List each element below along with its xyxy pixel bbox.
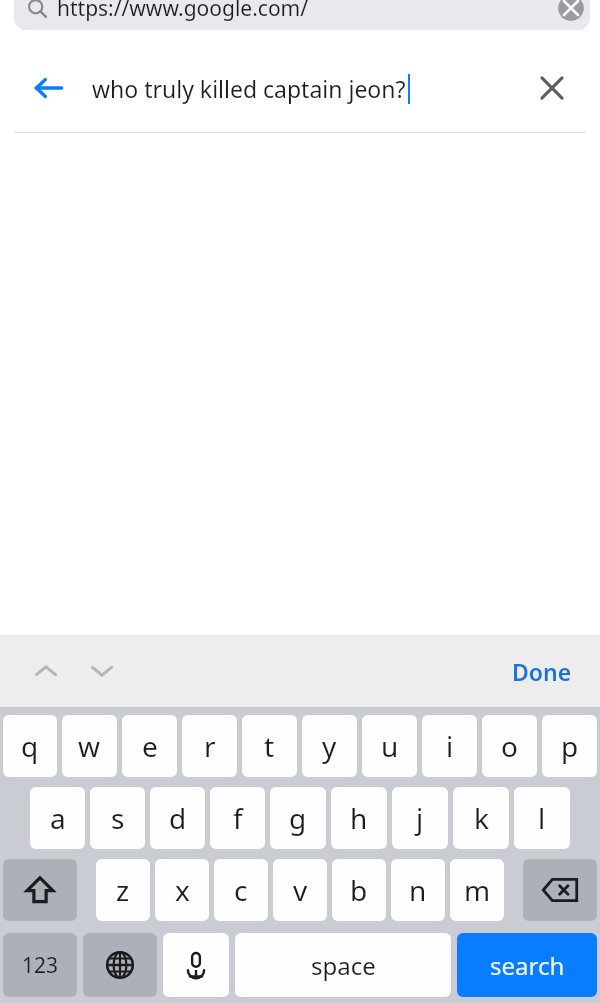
button[interactable]: Shift [3,859,77,921]
staticText: i [446,727,454,765]
staticText: u [381,727,399,765]
staticText: m [464,871,491,909]
button[interactable]: g [270,787,326,849]
staticText: x [175,871,190,909]
button[interactable]: f [210,787,265,849]
button[interactable]: r [182,715,237,777]
button[interactable]: space [235,933,451,997]
staticText: b [350,871,368,909]
button[interactable]: u [362,715,417,777]
staticText: h [350,799,368,837]
staticText: l [538,799,546,837]
button[interactable]: j [392,787,448,849]
staticText: v [293,871,308,909]
staticText: s [111,799,125,837]
staticText: w [78,727,101,765]
button[interactable]: search [457,933,597,997]
staticText: search [490,949,565,982]
button[interactable]: m [450,859,504,921]
button[interactable]: Backspace [523,859,597,921]
button[interactable]: k [453,787,509,849]
staticText: j [416,799,424,837]
button[interactable]: c [214,859,268,921]
staticText: y [322,727,337,765]
button[interactable]: 123 [3,933,77,997]
button[interactable]: Change keyboard [83,933,157,997]
button[interactable]: Clear search [532,68,572,108]
staticText: a [50,799,66,837]
staticText: t [264,727,275,765]
button[interactable]: Next field [80,649,124,693]
staticText: 123 [22,951,59,980]
button[interactable]: i [422,715,477,777]
button[interactable]: t [242,715,297,777]
staticText: r [204,727,216,765]
button[interactable]: Dictate [163,933,229,997]
button[interactable]: d [150,787,205,849]
staticText: https://www.google.com/ [57,0,558,23]
staticText: k [474,799,489,837]
staticText: q [21,727,39,765]
button[interactable]: https://www.google.com/ [14,0,590,30]
button[interactable]: a [30,787,85,849]
staticText: o [501,727,518,765]
staticText: p [561,727,579,765]
button[interactable]: o [482,715,537,777]
button[interactable]: x [155,859,209,921]
button[interactable]: Clear address [558,0,584,21]
button[interactable]: v [273,859,327,921]
staticText: c [234,871,248,909]
staticText: who truly killed captain jeon? [92,73,406,104]
button[interactable]: Back [0,44,600,132]
staticText: n [409,871,427,909]
button[interactable]: w [62,715,117,777]
button[interactable]: s [90,787,145,849]
button[interactable]: l [514,787,570,849]
button[interactable]: y [302,715,357,777]
button[interactable]: b [332,859,386,921]
staticText: d [169,799,187,837]
button[interactable]: p [542,715,597,777]
button[interactable]: Previous field [24,649,68,693]
button[interactable]: Done [512,656,572,687]
staticText: Done [512,656,572,687]
button[interactable]: z [96,859,150,921]
button[interactable]: n [391,859,445,921]
staticText: z [116,871,130,909]
button[interactable]: Back [28,67,70,109]
button[interactable]: h [331,787,387,849]
button[interactable]: e [122,715,177,777]
staticText: g [289,799,307,837]
staticText: space [311,949,376,982]
staticText: f [233,799,243,837]
button[interactable]: q [3,715,57,777]
staticText: e [142,727,158,765]
